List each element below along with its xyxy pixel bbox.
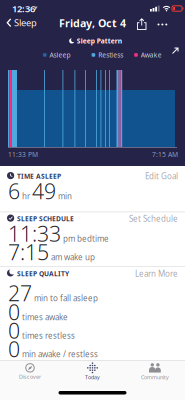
staticText: Discover — [19, 373, 41, 380]
staticText: Set Schedule — [129, 213, 178, 224]
staticText: 7:15 — [8, 238, 49, 266]
button[interactable] — [137, 18, 146, 30]
staticText: min awake / restless — [22, 349, 98, 359]
staticText: Community — [141, 374, 169, 381]
staticText: am wake up — [51, 252, 95, 262]
staticText: hr — [22, 191, 30, 201]
button[interactable]: Community — [125, 361, 185, 382]
button[interactable]: Learn More — [135, 268, 178, 279]
staticText: min — [58, 191, 72, 201]
staticText: 0 — [8, 335, 20, 363]
staticText: 11:33 PM — [8, 150, 38, 159]
staticText: min to fall asleep — [34, 293, 98, 303]
staticText: times awake — [22, 312, 68, 322]
button[interactable]: Today — [62, 361, 122, 382]
staticText: 7:15 AM — [152, 150, 178, 159]
staticText: 49 — [32, 177, 56, 205]
button[interactable]: Discover — [0, 361, 60, 382]
staticText: Restless — [98, 50, 123, 59]
staticText: pm bedtime — [63, 233, 109, 244]
button[interactable]: Edit Goal — [145, 171, 178, 181]
staticText: 27 — [8, 279, 32, 307]
button[interactable]: Sleep — [6, 16, 37, 29]
staticText: Friday, Oct 4 — [59, 16, 126, 30]
staticText: Awake — [141, 50, 162, 59]
button[interactable] — [172, 47, 178, 54]
staticText: Asleep — [50, 50, 71, 59]
staticText: times restless — [22, 330, 75, 341]
staticText: SLEEP SCHEDULE — [17, 214, 74, 223]
staticText: 12:36 — [12, 2, 35, 15]
staticText: Learn More — [135, 268, 178, 279]
staticText: 0 — [8, 316, 20, 345]
staticText: 11:33 — [8, 219, 61, 248]
staticText: 0 — [8, 298, 20, 326]
staticText: Sleep Pattern — [77, 36, 122, 45]
staticText: Sleep — [14, 16, 37, 29]
staticText: TIME ASLEEP — [17, 172, 61, 181]
button[interactable]: Set Schedule — [129, 213, 178, 224]
button[interactable] — [157, 23, 167, 25]
staticText: Today — [85, 374, 100, 381]
staticText: 6 — [8, 177, 20, 205]
staticText: Edit Goal — [145, 171, 178, 181]
staticText: SLEEP QUALITY — [17, 269, 69, 278]
